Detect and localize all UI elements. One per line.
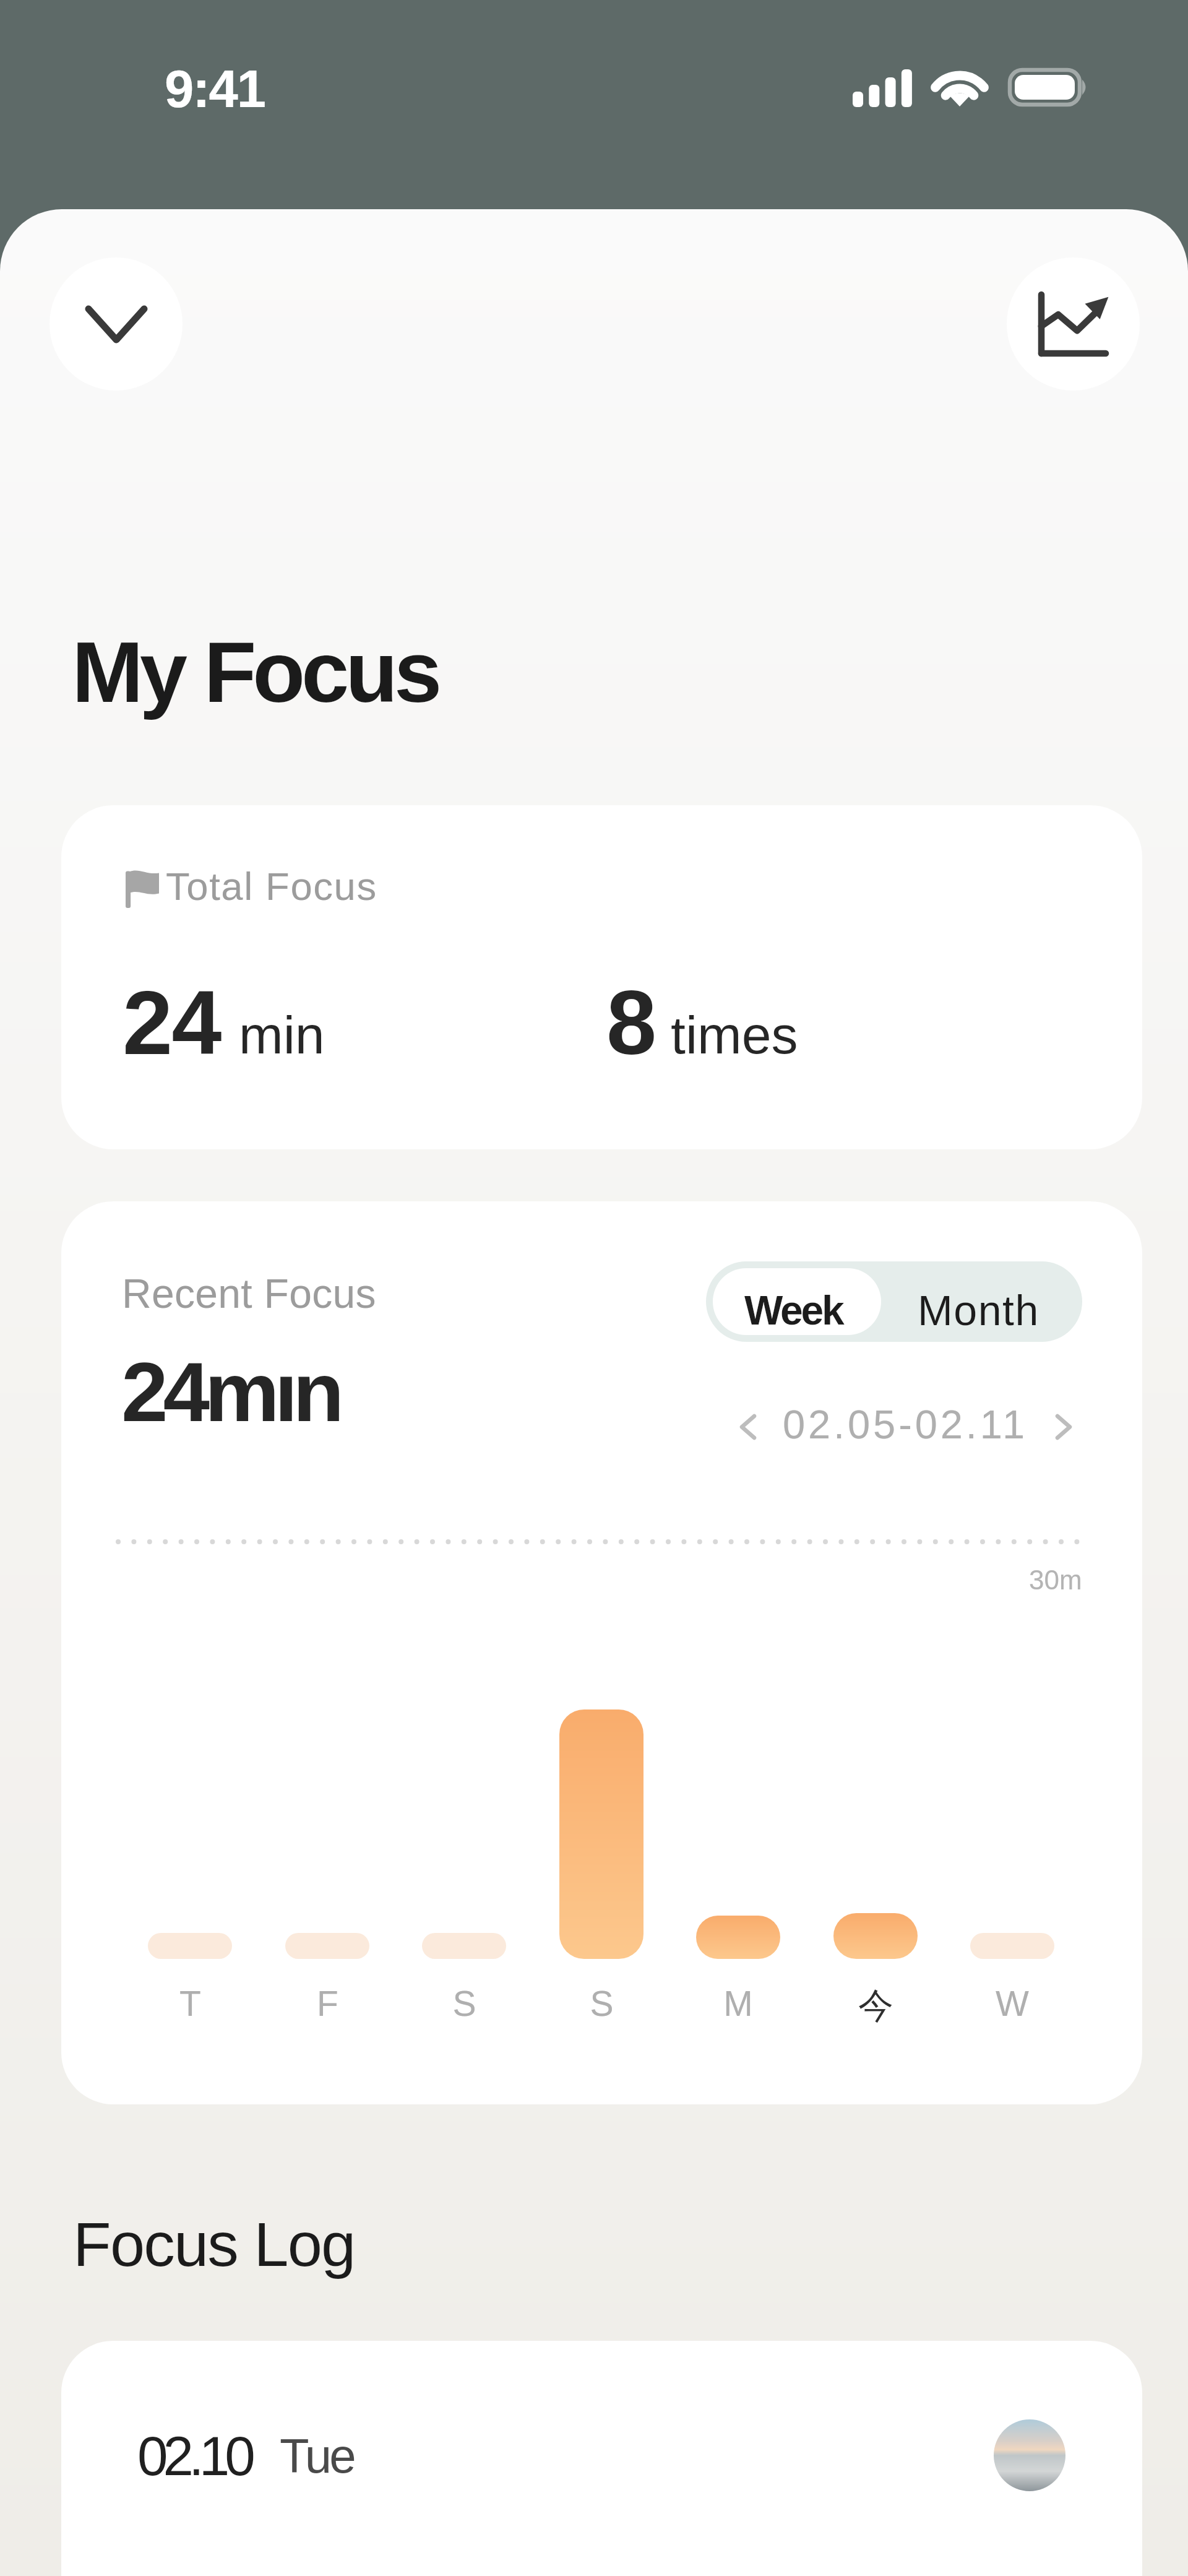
staticText: Week [744, 1287, 843, 1333]
button[interactable]: Previous week [728, 1414, 768, 1440]
staticText: S [452, 1984, 476, 2023]
staticText: 今 [858, 1984, 893, 2028]
staticText: Tue [280, 2429, 354, 2483]
staticText: 24mın [121, 1345, 340, 1439]
staticText: Recent Focus [122, 1271, 376, 1316]
staticText: F [317, 1984, 338, 2023]
button[interactable] [881, 1261, 1082, 1342]
staticText: S [590, 1984, 614, 2023]
staticText: M [723, 1984, 753, 2023]
button[interactable] [713, 1268, 881, 1335]
staticText: T [179, 1984, 201, 2023]
staticText: 8 [606, 972, 657, 1073]
button[interactable]: Statistics [1007, 257, 1140, 391]
staticText: Total Focus [166, 865, 377, 909]
staticText: 24 [123, 972, 221, 1073]
button[interactable]: Next week [1044, 1414, 1083, 1440]
staticText: 02.05-02.11 [783, 1402, 1028, 1447]
staticText: 30m [1029, 1565, 1082, 1595]
staticText: times [671, 1005, 798, 1065]
staticText: Month [918, 1287, 1039, 1334]
button[interactable] [61, 2341, 1142, 2576]
staticText: W [996, 1984, 1029, 2023]
staticText: min [239, 1005, 325, 1065]
staticText: My Focus [72, 624, 439, 720]
staticText: 02.10 [137, 2425, 251, 2486]
staticText: 9:41 [165, 59, 265, 118]
button[interactable] [61, 805, 1142, 1149]
button[interactable]: Collapse [49, 257, 183, 391]
staticText: Focus Log [73, 2210, 355, 2280]
